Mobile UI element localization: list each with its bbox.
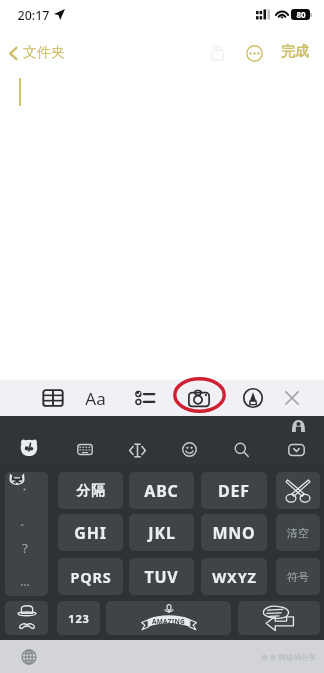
button[interactable]: Close bbox=[275, 381, 309, 415]
staticText: JKL bbox=[148, 522, 176, 544]
button[interactable]: GHI bbox=[58, 514, 123, 551]
button[interactable]: Space bbox=[106, 601, 231, 635]
button[interactable]: MNO bbox=[201, 514, 267, 551]
staticText: AMAZING bbox=[152, 617, 185, 626]
button[interactable]: PQRS bbox=[58, 558, 123, 595]
staticText: ? bbox=[22, 539, 28, 557]
button[interactable]: Hide keyboard bbox=[280, 434, 312, 466]
staticText: 123 bbox=[68, 611, 90, 626]
button[interactable]: Markup bbox=[236, 381, 270, 415]
staticText: 分隔 bbox=[76, 482, 105, 499]
button[interactable]: 符号 bbox=[276, 558, 320, 595]
staticText: 20:17 bbox=[17, 7, 50, 24]
button[interactable]: Text format bbox=[78, 381, 112, 415]
button[interactable]: 文件夹 bbox=[0, 39, 73, 67]
button[interactable]: Table bbox=[36, 381, 70, 415]
button[interactable]: Checklist bbox=[128, 381, 162, 415]
button[interactable]: Emoji bbox=[173, 433, 205, 465]
staticText: PQRS bbox=[70, 567, 112, 587]
button[interactable]: WXYZ bbox=[201, 558, 267, 595]
staticText: WXYZ bbox=[212, 567, 257, 587]
staticText: MNO bbox=[212, 522, 256, 544]
staticText: 完成 bbox=[281, 43, 309, 61]
staticText: 符号 bbox=[287, 570, 309, 584]
button[interactable]: Camera bbox=[182, 381, 216, 415]
staticText: DEF bbox=[218, 480, 250, 502]
button[interactable]: JKL bbox=[129, 514, 194, 551]
staticText: 。 bbox=[20, 515, 30, 528]
button[interactable]: Switch to ABC bbox=[5, 601, 48, 635]
button[interactable]: More options bbox=[240, 39, 268, 67]
staticText: … bbox=[20, 573, 30, 589]
button[interactable]: 清空 bbox=[276, 514, 320, 551]
button[interactable]: Search bbox=[225, 433, 257, 465]
staticText: TUV bbox=[144, 566, 179, 588]
button[interactable]: 123 bbox=[57, 601, 100, 635]
button[interactable]: Symbols and punctuation bbox=[5, 472, 48, 596]
button[interactable]: Baidu input bbox=[13, 431, 45, 463]
button[interactable]: Share bbox=[203, 39, 231, 67]
staticText: 文件夹 bbox=[23, 44, 65, 62]
button[interactable]: Cut bbox=[276, 472, 320, 509]
staticText: @ @ 网络码分享 bbox=[261, 652, 316, 662]
staticText: GHI bbox=[74, 522, 107, 544]
button[interactable]: Keyboard layout bbox=[69, 433, 101, 465]
staticText: 清空 bbox=[287, 526, 309, 540]
button[interactable]: TUV bbox=[129, 558, 194, 595]
staticText: ABC bbox=[144, 480, 179, 502]
button[interactable]: Language bbox=[16, 644, 42, 670]
button[interactable]: Enter bbox=[238, 601, 320, 635]
button[interactable]: 完成 bbox=[278, 38, 312, 66]
staticText: 80 bbox=[296, 9, 306, 20]
button[interactable]: Move cursor bbox=[121, 434, 153, 466]
staticText: Aa bbox=[85, 387, 106, 410]
button[interactable]: ABC bbox=[129, 472, 194, 509]
button[interactable]: DEF bbox=[201, 472, 267, 509]
button[interactable]: 分隔 bbox=[58, 472, 123, 509]
